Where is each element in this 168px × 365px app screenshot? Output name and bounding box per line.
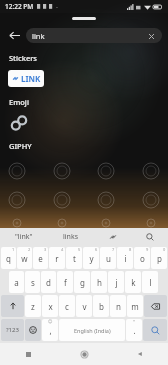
- button[interactable]: Home: [56, 343, 112, 365]
- staticText: k: [131, 277, 136, 288]
- button[interactable]: 3: [33, 247, 48, 269]
- button[interactable]: a: [9, 271, 24, 293]
- button[interactable]: Emoji: [25, 319, 41, 341]
- button[interactable]: v: [76, 295, 92, 317]
- button[interactable]: 9: [134, 247, 150, 269]
- staticText: m: [131, 301, 139, 312]
- button[interactable]: b: [93, 295, 109, 317]
- staticText: t: [73, 253, 76, 264]
- button[interactable]: h: [91, 271, 107, 293]
- button[interactable]: [95, 218, 117, 228]
- staticText: 8: [129, 247, 132, 252]
- button[interactable]: Back: [112, 343, 168, 365]
- staticText: n: [116, 301, 121, 312]
- staticText: g: [80, 277, 85, 288]
- button[interactable]: Search: [131, 228, 168, 245]
- button[interactable]: 4: [49, 247, 65, 269]
- button[interactable]: [6, 160, 28, 182]
- button[interactable]: j: [108, 271, 124, 293]
- staticText: ☺: [48, 319, 53, 324]
- button[interactable]: s: [25, 271, 40, 293]
- staticText: u: [106, 253, 111, 264]
- button[interactable]: ?123: [1, 319, 24, 341]
- staticText: d: [46, 277, 51, 288]
- button[interactable]: Search: [143, 319, 167, 341]
- staticText: l: [149, 277, 152, 288]
- staticText: -: [56, 3, 58, 11]
- button[interactable]: [95, 189, 117, 211]
- staticText: z: [31, 301, 35, 312]
- button[interactable]: [140, 189, 162, 211]
- staticText: h: [97, 277, 102, 288]
- button[interactable]: LINK: [8, 70, 44, 87]
- button[interactable]: 5: [66, 247, 82, 269]
- button[interactable]: [51, 218, 73, 228]
- button[interactable]: ": [126, 319, 142, 341]
- button[interactable]: [9, 113, 29, 133]
- button[interactable]: 0: [151, 247, 167, 269]
- button[interactable]: links: [47, 228, 94, 245]
- button[interactable]: l: [142, 271, 158, 293]
- button[interactable]: [140, 218, 162, 228]
- button[interactable]: Back: [4, 25, 24, 45]
- button[interactable]: link: [26, 28, 162, 43]
- button[interactable]: 1: [1, 247, 16, 269]
- button[interactable]: c: [59, 295, 75, 317]
- button[interactable]: x: [42, 295, 58, 317]
- staticText: links: [63, 232, 79, 242]
- button[interactable]: Shift: [1, 295, 24, 317]
- staticText: s: [31, 277, 35, 288]
- staticText: ?123: [6, 326, 19, 334]
- staticText: English (India): [74, 327, 111, 334]
- staticText: 5: [78, 247, 81, 252]
- staticText: 12:22 PM: [5, 2, 34, 11]
- button[interactable]: m: [127, 295, 143, 317]
- staticText: i: [124, 253, 127, 264]
- button[interactable]: [51, 160, 73, 182]
- staticText: o: [140, 253, 145, 264]
- staticText: r: [55, 253, 59, 264]
- button[interactable]: English (India): [59, 319, 125, 341]
- button[interactable]: Backspace: [144, 295, 167, 317]
- button[interactable]: z: [25, 295, 41, 317]
- staticText: e: [38, 253, 43, 264]
- staticText: Stickers: [9, 53, 38, 63]
- button[interactable]: 8: [117, 247, 133, 269]
- button[interactable]: Link: [94, 228, 131, 245]
- staticText: GIPHY: [9, 141, 32, 151]
- staticText: LINK: [21, 73, 41, 84]
- staticText: x: [48, 301, 53, 312]
- staticText: "link": [15, 232, 33, 242]
- button[interactable]: 2: [17, 247, 32, 269]
- button[interactable]: Clear: [146, 31, 156, 41]
- staticText: 6: [95, 247, 98, 252]
- staticText: 7: [112, 247, 115, 252]
- staticText: 9: [146, 247, 149, 252]
- staticText: 1: [12, 247, 15, 252]
- button[interactable]: ☺: [42, 319, 58, 341]
- button[interactable]: [51, 189, 73, 211]
- button[interactable]: [95, 160, 117, 182]
- staticText: 2: [28, 247, 31, 252]
- button[interactable]: n: [110, 295, 126, 317]
- staticText: 0: [163, 247, 166, 252]
- button[interactable]: [6, 218, 28, 228]
- button[interactable]: Recents: [0, 343, 56, 365]
- button[interactable]: "link": [0, 228, 47, 245]
- staticText: ,: [49, 325, 52, 336]
- button[interactable]: f: [57, 271, 73, 293]
- staticText: 3: [44, 247, 47, 252]
- button[interactable]: 6: [83, 247, 99, 269]
- button[interactable]: [6, 189, 28, 211]
- staticText: q: [6, 253, 11, 264]
- staticText: link: [32, 31, 146, 41]
- button[interactable]: k: [125, 271, 141, 293]
- staticText: .: [133, 325, 136, 336]
- staticText: v: [82, 301, 87, 312]
- button[interactable]: [140, 160, 162, 182]
- button[interactable]: 7: [100, 247, 116, 269]
- staticText: ": [133, 319, 135, 325]
- staticText: b: [99, 301, 104, 312]
- button[interactable]: g: [74, 271, 90, 293]
- button[interactable]: d: [41, 271, 56, 293]
